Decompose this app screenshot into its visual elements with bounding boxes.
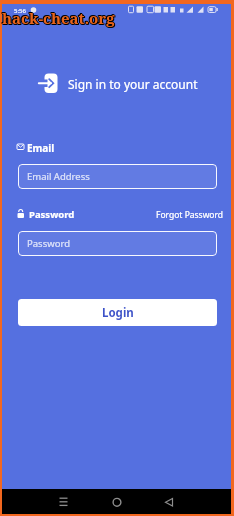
button[interactable] bbox=[155, 491, 183, 512]
button[interactable]: Forgot Password bbox=[156, 209, 224, 221]
button[interactable] bbox=[49, 491, 77, 512]
staticText: 5:56 bbox=[14, 7, 26, 15]
staticText: Password bbox=[29, 208, 75, 221]
staticText: hack-cheat.org bbox=[1, 7, 114, 27]
staticText: Login bbox=[102, 305, 134, 321]
staticText: hack-cheat.org bbox=[3, 8, 116, 28]
staticText: hack-cheat.org bbox=[3, 9, 116, 29]
staticText: hack-cheat.org bbox=[2, 7, 115, 27]
staticText: hack-cheat.org bbox=[1, 8, 114, 28]
button[interactable]: Login bbox=[18, 299, 217, 326]
staticText: Password bbox=[27, 237, 70, 250]
button[interactable]: Password bbox=[18, 231, 217, 256]
staticText: hack-cheat.org bbox=[2, 9, 115, 29]
staticText: Forgot Password bbox=[156, 209, 224, 221]
button[interactable] bbox=[103, 491, 131, 512]
staticText: Email Address bbox=[27, 170, 90, 183]
button[interactable]: Email Address bbox=[18, 164, 217, 189]
staticText: Sign in to your account bbox=[68, 76, 198, 92]
staticText: Email bbox=[27, 141, 55, 155]
staticText: hack-cheat.org bbox=[2, 8, 115, 28]
